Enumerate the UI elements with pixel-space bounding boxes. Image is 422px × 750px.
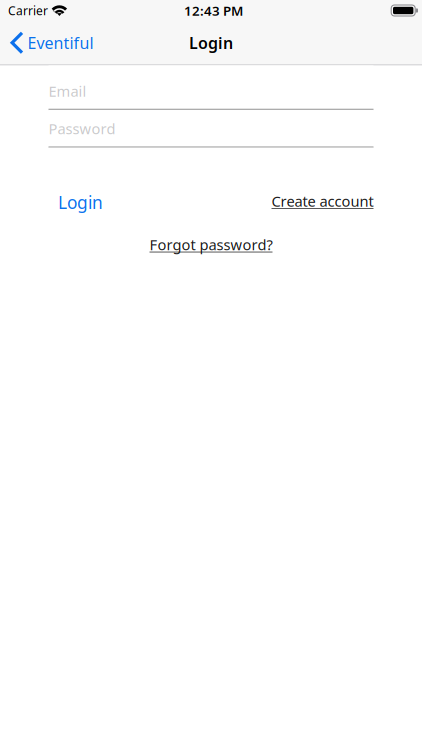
staticText: Eventiful <box>28 32 94 53</box>
staticText: Create account <box>271 191 373 211</box>
button[interactable]: Forgot password? <box>149 235 272 254</box>
button[interactable]: Create account <box>271 191 373 211</box>
staticText: Password <box>48 119 115 138</box>
button[interactable]: Email <box>48 81 373 110</box>
button[interactable]: Password <box>48 119 373 148</box>
staticText: 12:43 PM <box>184 2 243 19</box>
staticText: Forgot password? <box>149 235 272 254</box>
button[interactable]: Back to Eventiful <box>0 21 104 64</box>
staticText: Carrier <box>8 2 48 18</box>
staticText: Email <box>48 81 86 101</box>
staticText: Login <box>58 191 103 214</box>
staticText: Login <box>189 32 233 53</box>
button[interactable]: Login <box>48 191 103 214</box>
